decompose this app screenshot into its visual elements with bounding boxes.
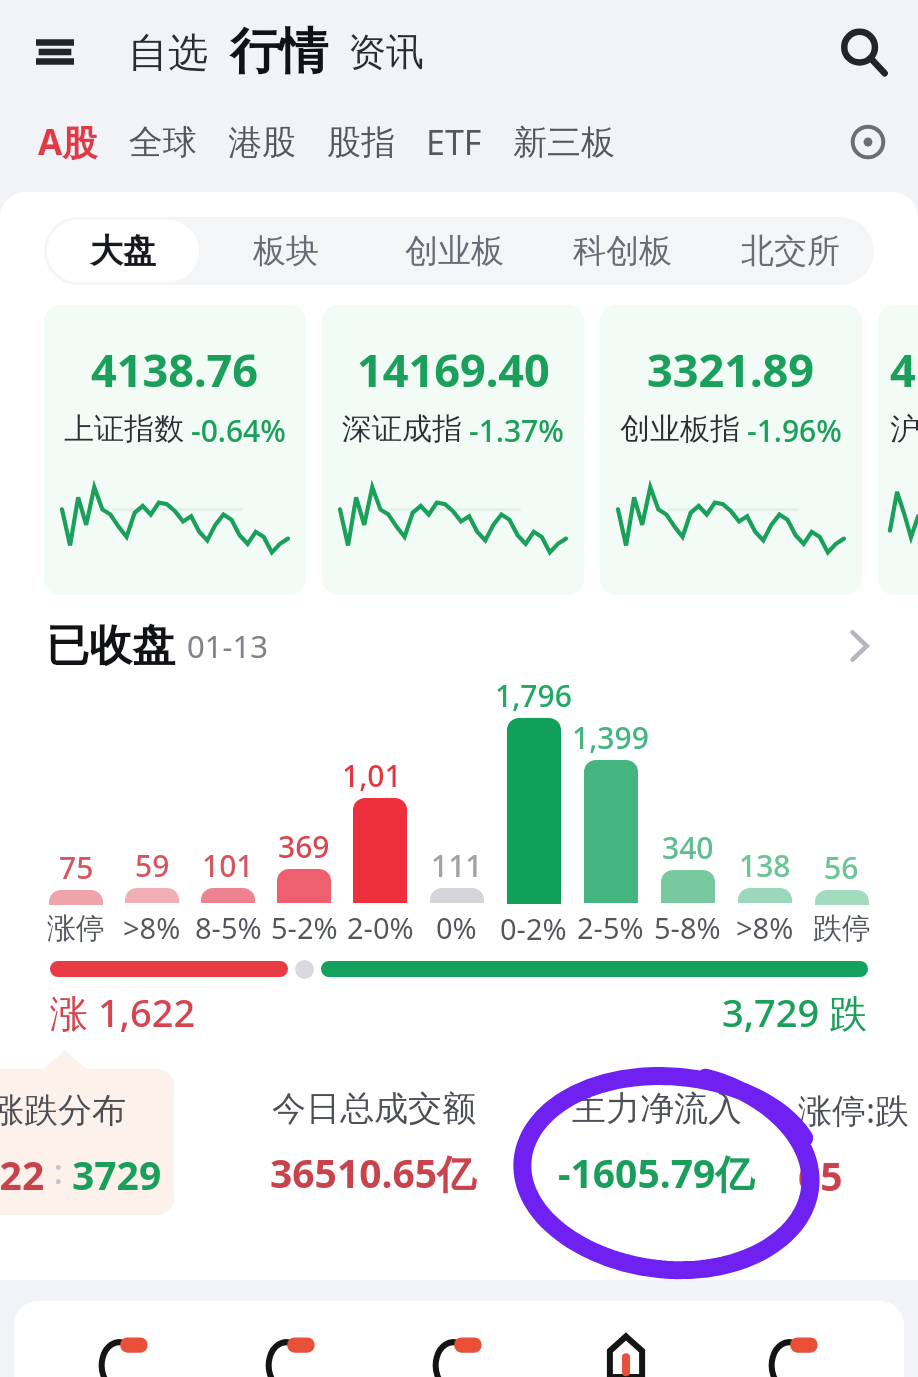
staticText: 今日总成交额 [272,1087,476,1130]
button[interactable]: 14169.40 [322,305,584,595]
staticText: 340 [662,827,714,868]
staticText: >8% [736,908,794,947]
staticText: 跌停 [813,910,871,947]
staticText: 369 [278,826,330,867]
staticText: 板块 [253,230,319,272]
button[interactable]: Search [830,20,894,84]
button[interactable]: 股指 [327,121,395,164]
staticText: 创业板 [405,230,504,272]
button[interactable]: 行情 [230,21,328,83]
staticText: 138 [739,845,791,886]
button[interactable]: 新三板 [513,121,615,164]
staticText: 5-8% [654,908,721,947]
button[interactable]: 全球 [129,121,197,164]
button[interactable]: 创业板 [373,220,535,282]
staticText: 3321.89 [647,339,815,400]
staticText: -0.64% [191,410,286,451]
button[interactable]: 北交所 [709,220,871,282]
button[interactable]: VIP [710,1319,878,1377]
button[interactable]: 涨停:跌 [798,1047,918,1215]
staticText: -1.37% [469,410,564,451]
staticText: 3729 [72,1148,162,1201]
button[interactable]: 4138.76 [44,305,306,595]
button[interactable]: Hot ranking [374,1319,542,1377]
staticText: 涨停 [47,910,105,947]
staticText: 大盘 [90,230,156,272]
staticText: 101 [202,845,254,886]
button[interactable]: Music [207,1319,374,1377]
button[interactable]: 今日总成交额 [232,1047,515,1215]
staticText: 科创板 [573,230,672,272]
button[interactable]: 3321.89 [600,305,862,595]
staticText: 59 [135,845,170,886]
button[interactable]: 资讯 [348,28,424,76]
staticText: -1.96% [747,410,842,451]
staticText: -1605.79亿 [558,1146,755,1199]
staticText: 111 [431,845,483,886]
button[interactable]: A股 [38,118,98,166]
staticText: 1,796 [495,675,572,716]
staticText: 4 [890,339,916,400]
staticText: 深证成指 [342,410,462,448]
button[interactable]: 港股 [228,121,296,164]
staticText: 3,729 跌 [722,986,868,1038]
staticText: 8-5% [195,908,262,947]
staticText: 14169.40 [357,339,550,400]
staticText: 涨跌分布 [0,1089,126,1132]
staticText: 0-2% [500,909,567,947]
button[interactable]: 已收盘 [46,617,872,675]
staticText: 涨 1,622 [50,986,196,1038]
staticText: 65 [798,1149,843,1202]
staticText: 已收盘 [46,619,175,673]
button[interactable]: 自选 [128,27,208,77]
staticText: 36510.65亿 [270,1146,477,1199]
button[interactable]: ETF [426,119,482,165]
button[interactable]: 大盘 [47,220,199,282]
staticText: 创业板指 [620,410,740,448]
staticText: 1,018 [342,755,418,796]
staticText: 75 [59,847,94,888]
staticText: 北交所 [741,230,840,272]
staticText: 2-5% [577,908,644,947]
staticText: 2-0% [347,908,414,947]
staticText: 01-13 [187,625,268,667]
staticText: 1622 [0,1148,45,1201]
button[interactable]: Home [542,1319,710,1377]
button[interactable]: 板块 [205,220,367,282]
button[interactable]: 主力净流入 [515,1047,798,1215]
button[interactable]: Menu [26,23,84,81]
button[interactable]: 科创板 [541,220,703,282]
staticText: 0% [436,908,477,947]
staticText: 1,399 [572,717,649,758]
staticText: 5-2% [271,908,338,947]
button[interactable]: 4 [878,305,918,595]
staticText: >8% [123,908,181,947]
staticText: 主力净流入 [572,1087,742,1130]
button[interactable]: Calendar [40,1319,207,1377]
button[interactable]: 涨跌分布 [0,1069,174,1215]
button[interactable]: Settings [840,114,896,170]
staticText: 沪 [890,410,918,448]
staticText: 涨停:跌 [798,1087,910,1133]
staticText: 4138.76 [91,339,259,400]
staticText: : [45,1148,72,1194]
staticText: 上证指数 [64,410,184,448]
staticText: 56 [824,847,859,888]
